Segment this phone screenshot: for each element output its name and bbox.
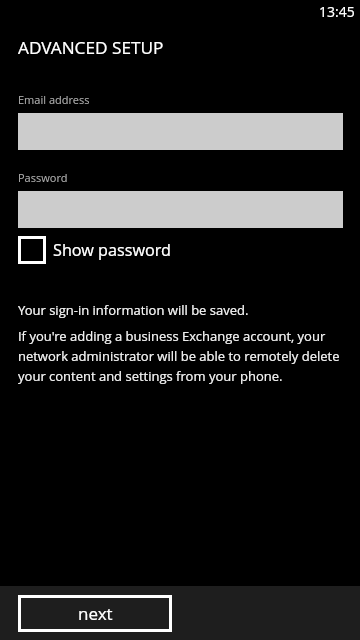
staticText: 13:45: [319, 2, 355, 21]
staticText: Password: [18, 170, 68, 185]
staticText: Email address: [18, 92, 90, 107]
staticText: Your sign-in information will be saved.: [18, 301, 249, 319]
button[interactable]: Show password: [18, 236, 172, 264]
staticText: If you're adding a business Exchange acc…: [18, 327, 344, 385]
button[interactable]: next: [18, 595, 172, 632]
staticText: Show password: [53, 239, 172, 261]
staticText: ADVANCED SETUP: [18, 36, 164, 59]
staticText: next: [78, 602, 113, 625]
